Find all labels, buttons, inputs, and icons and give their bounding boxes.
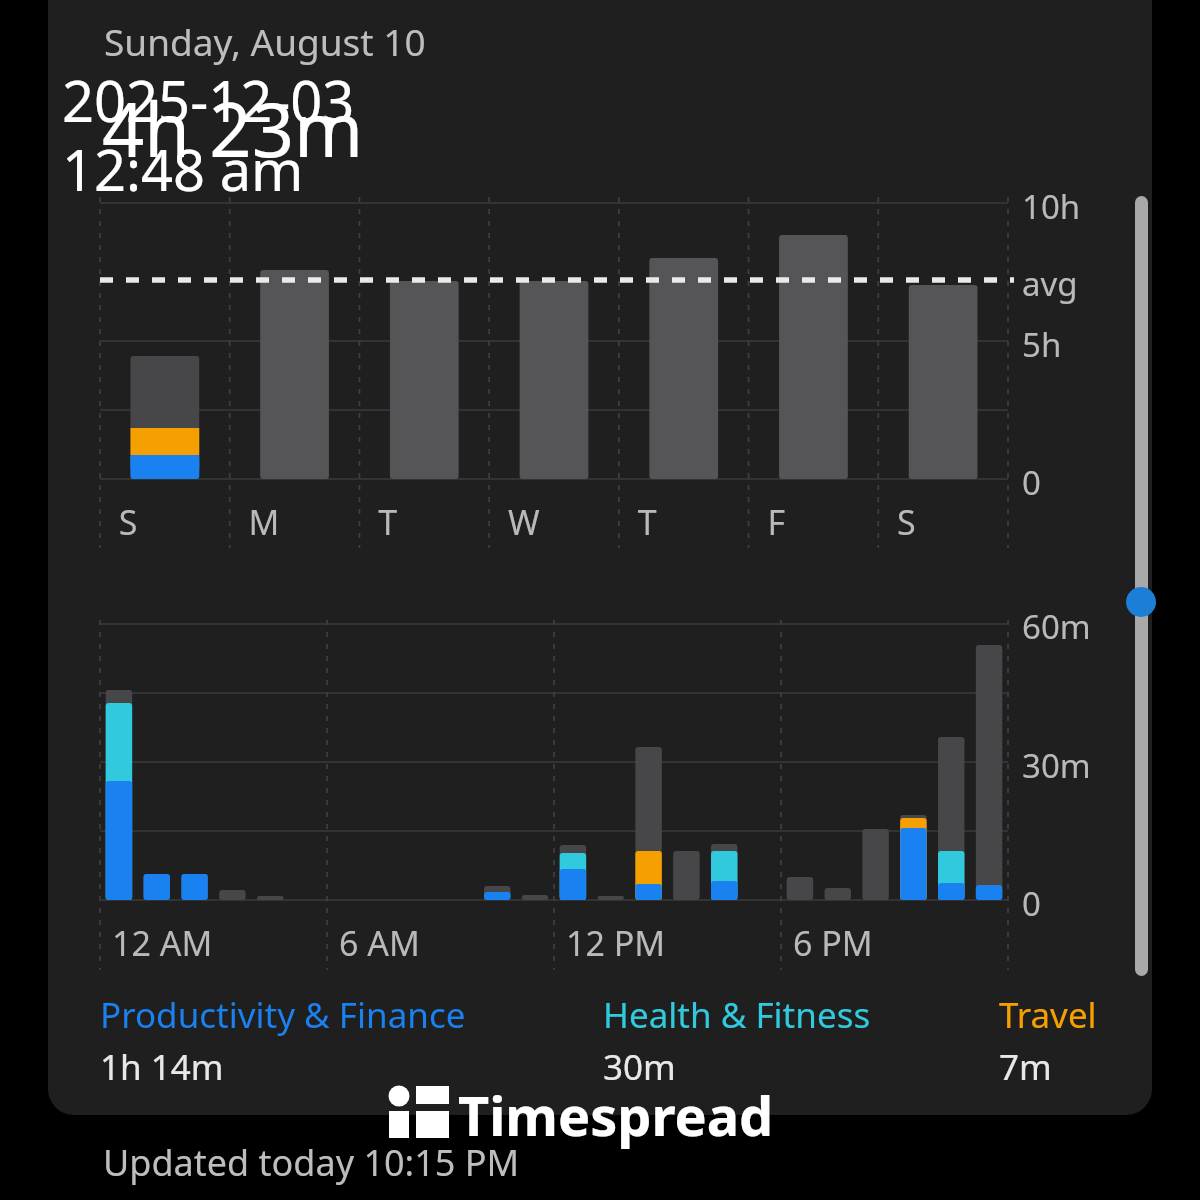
- button[interactable]: Screen time summary card: [0, 0, 1200, 1200]
